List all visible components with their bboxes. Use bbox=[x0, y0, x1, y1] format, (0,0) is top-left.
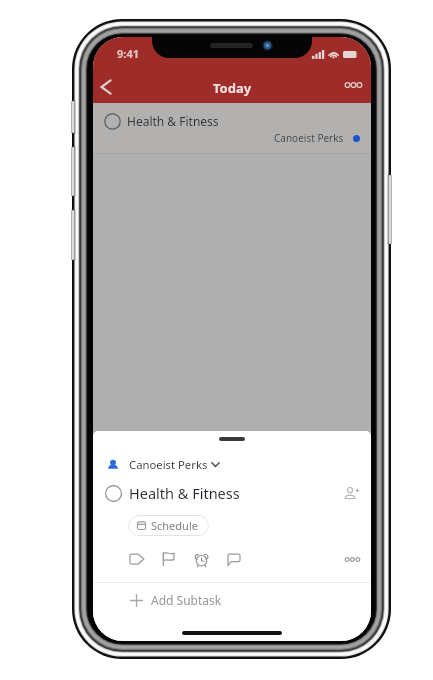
button[interactable]: Add Subtask bbox=[93, 583, 371, 617]
button[interactable]: Back bbox=[93, 67, 119, 103]
button[interactable]: Priority flag bbox=[157, 550, 179, 568]
button[interactable]: Labels bbox=[126, 550, 148, 568]
staticText: Today bbox=[213, 79, 252, 97]
button[interactable]: Assign task bbox=[338, 480, 364, 506]
button[interactable]: Complete task bbox=[104, 484, 123, 503]
button[interactable]: More options bbox=[338, 70, 368, 100]
staticText: Add Subtask bbox=[151, 592, 222, 608]
staticText: Canoeist Perks bbox=[129, 457, 208, 472]
button[interactable]: Comments bbox=[223, 550, 245, 568]
staticText: 9:41 bbox=[117, 46, 139, 61]
button[interactable]: Schedule bbox=[128, 515, 209, 536]
staticText: Canoeist Perks bbox=[274, 131, 344, 145]
staticText: Schedule bbox=[151, 518, 198, 533]
staticText: Health & Fitness bbox=[129, 483, 240, 503]
button[interactable]: Canoeist Perks bbox=[93, 453, 371, 476]
staticText: Health & Fitness bbox=[127, 113, 219, 129]
button[interactable]: More actions bbox=[340, 550, 364, 568]
button[interactable]: Health & Fitness bbox=[93, 103, 371, 153]
button[interactable]: Reminder bbox=[190, 550, 212, 568]
